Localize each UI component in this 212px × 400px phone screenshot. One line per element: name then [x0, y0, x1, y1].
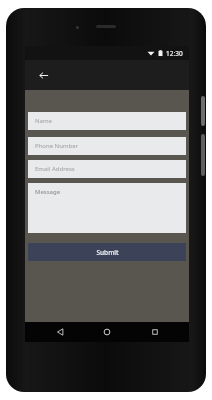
button[interactable]: Back [28, 60, 58, 90]
button[interactable]: Message [28, 183, 186, 233]
button[interactable]: Recent apps [142, 322, 168, 342]
other: Volume [201, 134, 205, 176]
button[interactable]: Email Address [28, 160, 186, 178]
button[interactable]: Home [94, 322, 120, 342]
button[interactable]: Name [28, 112, 186, 130]
button[interactable]: Back [47, 322, 73, 342]
other: Power [201, 96, 205, 126]
staticText: Message [35, 188, 61, 196]
staticText: Phone Number [35, 142, 79, 150]
staticText: 12:30 [166, 49, 183, 58]
button[interactable]: Submit [28, 243, 186, 261]
staticText: Name [35, 117, 52, 125]
staticText: Submit [96, 248, 119, 257]
staticText: Email Address [35, 165, 75, 173]
button[interactable]: Phone Number [28, 137, 186, 155]
